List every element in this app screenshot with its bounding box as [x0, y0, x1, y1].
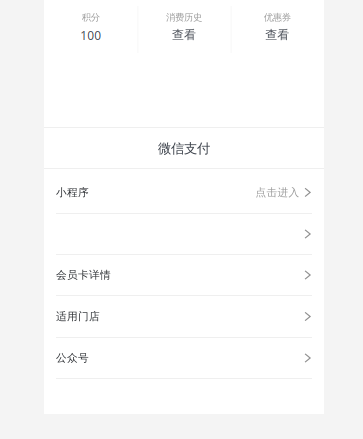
button[interactable]: 微信支付 — [44, 128, 324, 169]
staticText: 小程序 — [56, 186, 89, 199]
staticText: 100 — [80, 27, 101, 43]
button[interactable]: 适用门店 — [44, 296, 324, 337]
button[interactable]: 公众号 — [44, 338, 324, 378]
button[interactable]: 会员卡详情 — [44, 255, 324, 295]
staticText: 优惠券 — [264, 12, 291, 23]
staticText: 会员卡详情 — [56, 268, 111, 281]
staticText: 适用门店 — [56, 310, 100, 323]
staticText: 微信支付 — [158, 140, 210, 157]
button[interactable]: 消费历史 — [137, 0, 231, 53]
staticText: 查看 — [265, 27, 289, 42]
staticText: 查看 — [172, 27, 196, 42]
staticText: 点击进入 — [255, 186, 299, 199]
button[interactable]: 更多 — [44, 214, 324, 254]
button[interactable]: 积分 — [44, 0, 137, 53]
staticText: 消费历史 — [166, 12, 202, 23]
button[interactable]: 优惠券 — [231, 0, 324, 53]
staticText: 公众号 — [56, 351, 89, 364]
staticText: 积分 — [82, 12, 100, 23]
button[interactable]: 小程序 — [44, 170, 324, 214]
